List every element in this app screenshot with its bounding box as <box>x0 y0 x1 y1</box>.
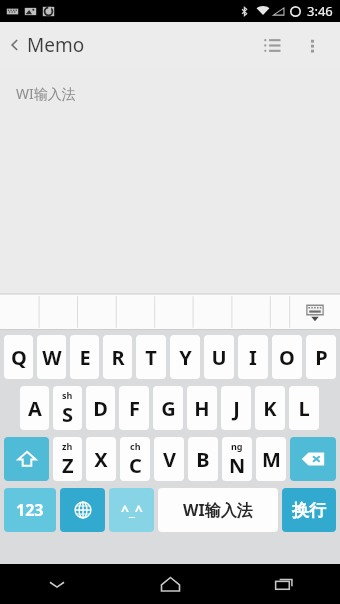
button[interactable]: E <box>70 335 99 379</box>
staticText: L <box>298 395 310 422</box>
staticText: A <box>28 395 42 422</box>
button[interactable]: U <box>204 335 234 379</box>
button[interactable]: Q <box>4 335 33 379</box>
staticText: ng <box>231 440 243 452</box>
button[interactable]: B <box>188 437 218 481</box>
button[interactable]: P <box>306 335 336 379</box>
staticText: X <box>94 446 108 473</box>
button[interactable]: D <box>86 386 115 430</box>
other: Back <box>6 36 24 54</box>
staticText: J <box>233 395 240 422</box>
button[interactable]: I <box>238 335 268 379</box>
staticText: B <box>196 446 210 473</box>
button[interactable]: H <box>187 386 217 430</box>
button[interactable]: J <box>221 386 251 430</box>
staticText: sh <box>62 389 73 401</box>
button[interactable]: WI输入法 <box>158 488 278 532</box>
staticText: H <box>194 395 210 422</box>
button[interactable]: ch <box>120 437 150 481</box>
staticText: T <box>145 344 157 371</box>
button[interactable]: Shift <box>4 437 49 481</box>
button[interactable]: Switch language <box>60 488 105 532</box>
staticText: 3:46 <box>307 2 333 20</box>
staticText: G <box>161 395 176 422</box>
button[interactable]: O <box>272 335 302 379</box>
button[interactable]: 换行 <box>282 488 336 532</box>
button[interactable]: Recent apps <box>227 564 340 604</box>
staticText: R <box>111 344 125 371</box>
staticText: 换行 <box>292 500 326 521</box>
button[interactable]: More options <box>292 25 332 65</box>
button[interactable]: X <box>86 437 116 481</box>
button[interactable]: zh <box>53 437 82 481</box>
button[interactable]: sh <box>53 386 82 430</box>
staticText: S <box>62 401 74 428</box>
button[interactable]: Backspace <box>290 437 336 481</box>
staticText: zh <box>62 440 73 452</box>
staticText: D <box>93 395 108 422</box>
button[interactable]: Hide keyboard <box>290 294 340 330</box>
staticText: C <box>129 452 142 479</box>
button[interactable]: Back <box>6 32 85 58</box>
staticText: O <box>279 344 295 371</box>
button[interactable]: R <box>103 335 132 379</box>
staticText: Q <box>11 344 27 371</box>
staticText: ^_^ <box>121 501 143 520</box>
staticText: N <box>229 452 246 479</box>
staticText: W <box>42 344 62 371</box>
button[interactable]: Home <box>114 564 227 604</box>
button[interactable]: F <box>119 386 149 430</box>
button[interactable]: M <box>256 437 286 481</box>
button[interactable]: ng <box>222 437 252 481</box>
staticText: I <box>249 344 257 371</box>
button[interactable]: L <box>289 386 319 430</box>
staticText: 123 <box>16 499 44 521</box>
button[interactable]: V <box>154 437 184 481</box>
staticText: K <box>263 395 277 422</box>
staticText: P <box>315 344 328 371</box>
staticText: ch <box>130 440 141 452</box>
button[interactable]: 123 <box>4 488 56 532</box>
staticText: Memo <box>27 32 85 58</box>
button[interactable]: G <box>153 386 183 430</box>
button[interactable]: List view <box>252 25 292 65</box>
staticText: WI输入法 <box>183 499 253 521</box>
staticText: M <box>262 446 281 473</box>
button[interactable]: W <box>37 335 66 379</box>
button[interactable]: Y <box>170 335 200 379</box>
staticText: Y <box>179 344 192 371</box>
staticText: Z <box>62 452 74 479</box>
staticText: E <box>79 344 91 371</box>
button[interactable]: WI输入法 <box>0 68 340 294</box>
button[interactable]: A <box>20 386 49 430</box>
button[interactable]: Hide keyboard <box>0 564 114 604</box>
button[interactable]: ^_^ <box>109 488 154 532</box>
staticText: WI输入法 <box>16 84 76 103</box>
staticText: V <box>163 446 176 473</box>
button[interactable]: K <box>255 386 285 430</box>
button[interactable]: T <box>136 335 166 379</box>
staticText: U <box>211 344 227 371</box>
staticText: F <box>129 395 140 422</box>
